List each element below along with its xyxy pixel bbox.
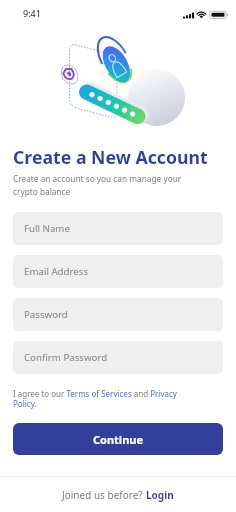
staticText: Full Name <box>24 222 70 235</box>
staticText: Create a New Account <box>13 145 208 169</box>
button[interactable]: Confirm Password <box>13 341 223 374</box>
staticText: Create an account so you can manage your… <box>13 173 182 197</box>
button[interactable]: Email Address <box>13 255 223 288</box>
staticText: Email Address <box>24 265 89 278</box>
staticText: 9:41 <box>23 7 41 19</box>
staticText: Login <box>146 488 174 502</box>
button[interactable]: Password <box>13 298 223 331</box>
button[interactable]: I agree to our Terms of Services and Pri… <box>13 388 177 409</box>
staticText: Joined us before? <box>62 488 146 502</box>
button[interactable]: Full Name <box>13 212 223 245</box>
staticText: Password <box>24 308 68 321</box>
staticText: Confirm Password <box>24 351 108 364</box>
staticText: Continue <box>93 432 144 447</box>
button[interactable]: Continue <box>13 423 223 455</box>
staticText: I agree to our Terms of Services and Pri… <box>13 388 177 409</box>
button[interactable]: Login <box>146 488 174 502</box>
